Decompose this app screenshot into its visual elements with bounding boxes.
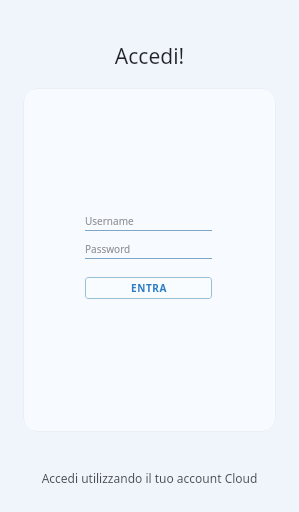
staticText: Username (85, 214, 134, 227)
button[interactable]: Username (85, 214, 212, 231)
button[interactable]: ENTRA (85, 277, 212, 299)
staticText: Accedi utilizzando il tuo account Cloud (0, 470, 299, 486)
staticText: ENTRA (131, 281, 167, 295)
staticText: Password (85, 242, 131, 255)
staticText: Accedi! (0, 42, 299, 71)
button[interactable]: Password (85, 242, 212, 259)
